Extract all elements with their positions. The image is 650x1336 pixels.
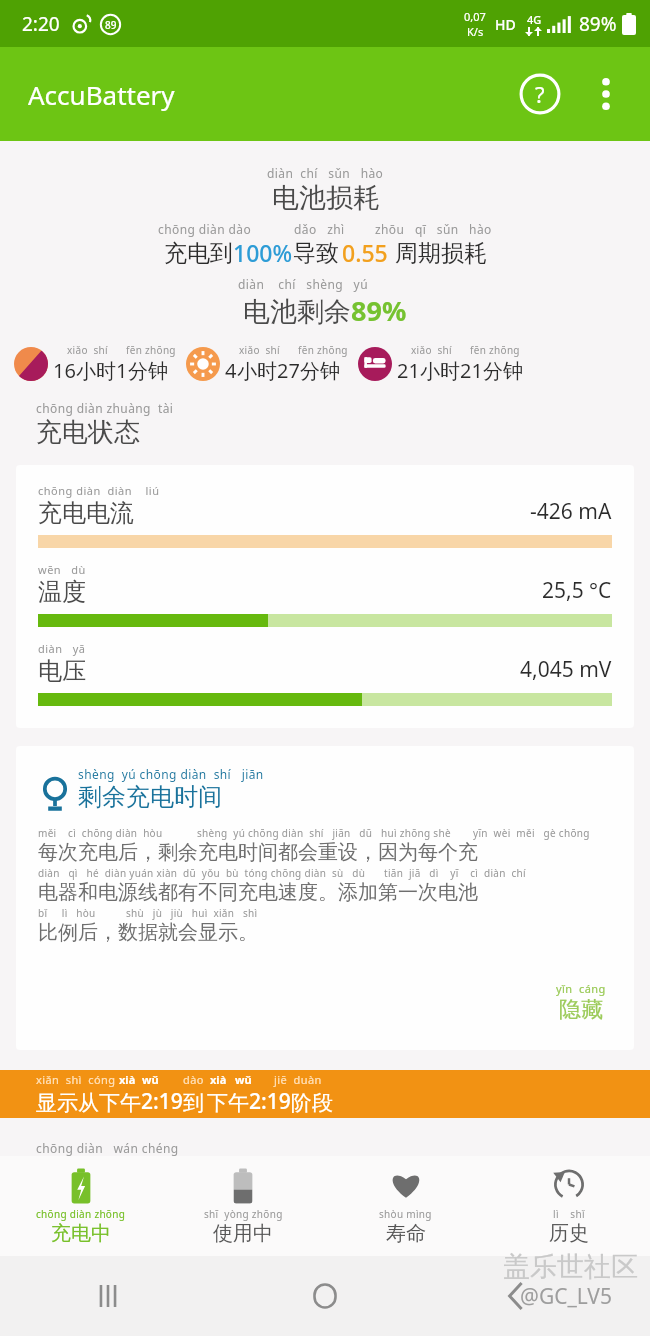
staticText: 周期损耗	[395, 239, 487, 268]
staticText: xiǎo shí	[239, 343, 280, 357]
staticText: 0,07	[464, 9, 486, 24]
staticText: ?	[535, 79, 545, 109]
staticText: 电器和电源线都有不同充电速度。添加第一次电池	[38, 880, 478, 905]
staticText: AccuBattery	[28, 77, 175, 112]
staticText: dǎo zhì	[294, 221, 345, 237]
staticText: 充电电流	[38, 498, 134, 528]
staticText: shòu mìng	[379, 1207, 432, 1221]
staticText: 100%	[233, 237, 293, 268]
staticText: 下午	[207, 1090, 249, 1116]
staticText: 到	[183, 1090, 204, 1116]
staticText: 使用中	[213, 1221, 273, 1246]
staticText: zhōu qī sǔn hào	[375, 221, 492, 237]
staticText: bǐ lì hòu	[38, 906, 96, 920]
staticText: chōng diàn zhuàng tài	[36, 400, 174, 416]
button[interactable]: Discharging	[162, 1161, 324, 1252]
staticText: jiē duàn	[274, 1072, 322, 1087]
staticText: 21	[460, 357, 483, 384]
staticText: fēn zhōng	[126, 343, 176, 357]
staticText: yǐn cáng	[556, 981, 606, 996]
staticText: 4,045 mV	[520, 655, 612, 684]
staticText: 寿命	[386, 1221, 426, 1246]
staticText: 分钟	[483, 359, 523, 384]
button[interactable]: History	[487, 1161, 650, 1252]
button[interactable]: Recents	[0, 1256, 216, 1336]
staticText: 16	[53, 357, 76, 384]
staticText: 充电中	[51, 1221, 111, 1246]
staticText: 阶段	[291, 1090, 333, 1116]
staticText: fēn zhōng	[298, 343, 348, 357]
staticText: 89%	[579, 11, 617, 37]
button[interactable]: Charging	[0, 1161, 162, 1252]
staticText: shī yòng zhōng	[204, 1207, 283, 1221]
staticText: 电压	[38, 656, 86, 686]
button[interactable]: Home	[216, 1256, 433, 1336]
staticText: 分钟	[128, 359, 168, 384]
staticText: 2:19	[249, 1087, 291, 1116]
button[interactable]: Health	[324, 1161, 487, 1252]
staticText: xià	[210, 1072, 227, 1087]
staticText: fēn zhōng	[470, 343, 520, 357]
staticText: 4G	[527, 12, 542, 27]
staticText: chōng diàn wán chéng	[36, 1140, 179, 1156]
staticText: shèng yú chōng diàn shí jiān dū huì zhōn…	[197, 826, 451, 840]
staticText: HD	[495, 15, 516, 34]
staticText: chōng diàn diàn liú	[38, 483, 160, 498]
staticText: diàn chí sǔn hào	[267, 165, 384, 181]
staticText: 电池损耗	[272, 181, 380, 215]
staticText: 历史	[549, 1221, 589, 1246]
button[interactable]: Back	[433, 1256, 650, 1336]
staticText: 小时	[420, 359, 460, 384]
button[interactable]: Help	[516, 70, 564, 118]
staticText: K/s	[467, 24, 484, 39]
staticText: 89%	[351, 292, 407, 329]
staticText: wǔ	[142, 1072, 159, 1087]
button[interactable]: xiǎo shí	[358, 343, 523, 384]
staticText: 剩余充电时间	[78, 782, 222, 812]
staticText: 1	[116, 357, 128, 384]
staticText: 25,5 °C	[542, 576, 612, 605]
staticText: 27	[277, 357, 300, 384]
staticText: 充电状态	[36, 416, 140, 449]
staticText: 充电到	[164, 239, 233, 268]
staticText: 电池剩余	[243, 295, 351, 329]
staticText: wǔ	[235, 1072, 252, 1087]
button[interactable]: More options	[584, 72, 628, 116]
staticText: 小时	[76, 359, 116, 384]
staticText: xiǎo shí	[67, 343, 108, 357]
staticText: 下午	[99, 1090, 141, 1116]
staticText: lì shǐ	[553, 1207, 585, 1221]
staticText: diàn chí shèng yú	[238, 276, 368, 292]
staticText: shèng yú chōng diàn shí jiān	[78, 766, 264, 782]
staticText: měi cì chōng diàn hòu	[38, 826, 163, 840]
button[interactable]: chōng diàn diàn liú	[16, 465, 634, 728]
staticText: tiān jiā dì yī cì diàn chí	[384, 866, 526, 880]
staticText: 0.55	[342, 237, 388, 268]
staticText: dào	[183, 1072, 204, 1087]
button[interactable]: xiǎn shì cóng	[0, 1070, 650, 1118]
staticText: 温度	[38, 577, 86, 607]
staticText: 盖乐世社区	[503, 1250, 638, 1284]
staticText: 每次充电后，剩余充电时间都会重设，因为每个充	[38, 840, 478, 865]
button[interactable]: xiǎo shí	[14, 343, 176, 384]
staticText: diàn yā	[38, 641, 86, 656]
staticText: shù jù jiù huì xiǎn shì	[126, 906, 258, 920]
staticText: 导致	[293, 239, 339, 268]
staticText: diàn qì hé diàn yuán xiàn dū yǒu bù tóng…	[38, 866, 366, 880]
staticText: 显示从	[36, 1090, 99, 1116]
staticText: xià	[119, 1072, 136, 1087]
staticText: 分钟	[300, 359, 340, 384]
staticText: chōng diàn dào	[158, 221, 252, 237]
staticText: yīn wèi měi gè chōng	[473, 826, 590, 840]
button[interactable]: yǐn cáng	[550, 979, 612, 1026]
staticText: -426 mA	[530, 497, 612, 526]
staticText: 2:19	[141, 1087, 183, 1116]
staticText: xiǎn shì cóng	[36, 1072, 116, 1087]
staticText: wēn dù	[38, 562, 86, 577]
button[interactable]: xiǎo shí	[186, 343, 348, 384]
staticText: 89	[105, 18, 117, 32]
staticText: 21	[397, 357, 420, 384]
staticText: 2:20	[22, 11, 60, 37]
staticText: 隐藏	[559, 996, 603, 1024]
staticText: xiǎo shí	[411, 343, 452, 357]
